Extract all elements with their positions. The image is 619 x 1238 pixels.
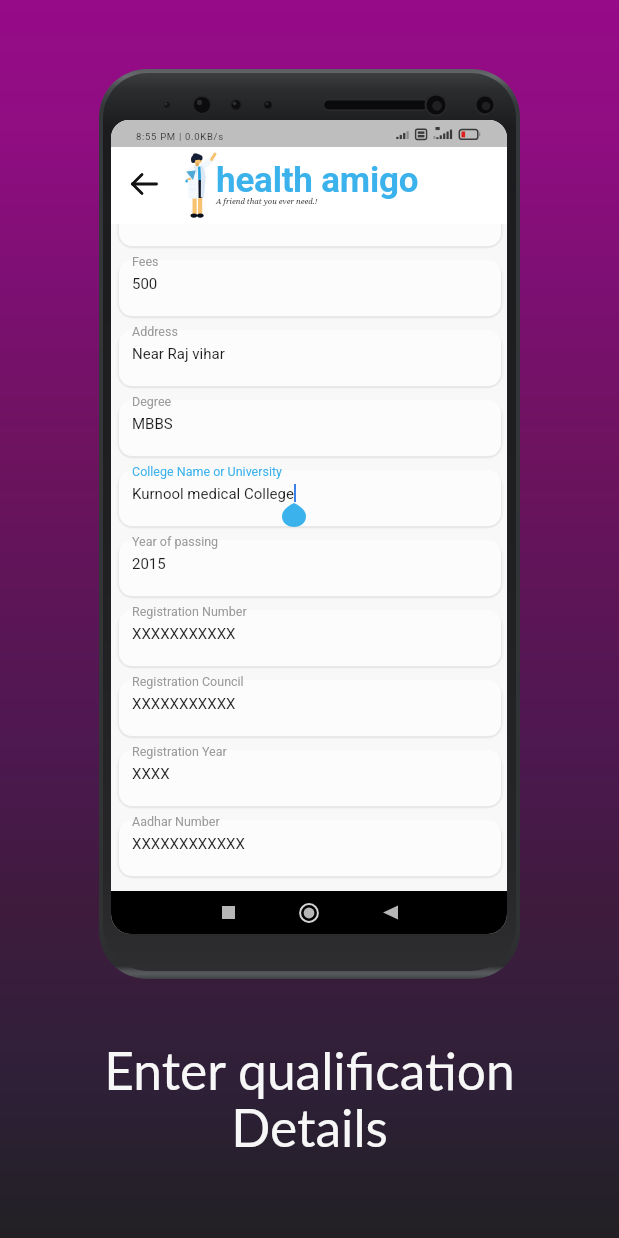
button[interactable] bbox=[119, 260, 501, 316]
button[interactable] bbox=[119, 750, 501, 806]
staticText: A friend that you ever need.! bbox=[216, 196, 318, 206]
staticText: Degree bbox=[132, 394, 172, 409]
button[interactable] bbox=[119, 400, 501, 456]
staticText: Near Raj vihar bbox=[132, 345, 225, 363]
staticText: Fees bbox=[132, 254, 159, 269]
staticText: health amigo bbox=[216, 160, 419, 201]
button[interactable] bbox=[119, 540, 501, 596]
staticText: Address bbox=[132, 324, 178, 339]
button[interactable] bbox=[119, 330, 501, 386]
staticText: Registration Council bbox=[132, 674, 244, 689]
staticText: XXXXXXXXXXXX bbox=[132, 835, 245, 853]
staticText: Kurnool medical College bbox=[132, 485, 294, 503]
staticText: Registration Year bbox=[132, 744, 227, 759]
button[interactable] bbox=[119, 470, 501, 526]
staticText: Enter qualification bbox=[104, 1039, 515, 1101]
staticText: XXXXXXXXXXX bbox=[132, 695, 236, 713]
button[interactable]: Home bbox=[287, 891, 331, 934]
button[interactable] bbox=[119, 610, 501, 666]
staticText: College Name or University bbox=[132, 464, 282, 479]
staticText: Aadhar Number bbox=[132, 814, 220, 829]
staticText: 8:55 PM | 0.0KB/s bbox=[136, 131, 224, 142]
button[interactable]: Recents bbox=[206, 891, 250, 934]
button[interactable]: Back bbox=[368, 891, 412, 934]
staticText: Year of passing bbox=[132, 534, 219, 549]
staticText: XXXXXXXXXXX bbox=[132, 625, 236, 643]
staticText: MBBS bbox=[132, 415, 173, 433]
staticText: 2015 bbox=[132, 555, 166, 573]
button[interactable]: Back bbox=[123, 163, 165, 205]
staticText: Details bbox=[231, 1096, 388, 1158]
staticText: Registration Number bbox=[132, 604, 247, 619]
button[interactable] bbox=[119, 680, 501, 736]
staticText: 500 bbox=[132, 275, 158, 293]
button[interactable] bbox=[119, 820, 501, 876]
staticText: XXXX bbox=[132, 765, 170, 783]
